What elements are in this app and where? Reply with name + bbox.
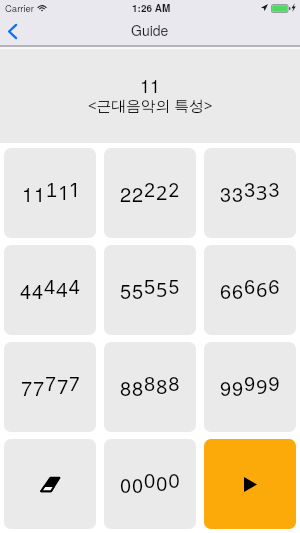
staticText: 6	[244, 276, 256, 298]
staticText: 7	[33, 373, 45, 402]
staticText: 9	[220, 373, 232, 402]
staticText: 8	[132, 373, 144, 402]
staticText: 1	[58, 179, 70, 206]
staticText: 6	[232, 276, 244, 305]
button[interactable]: 0	[104, 439, 196, 529]
staticText: 2	[168, 179, 180, 202]
staticText: 4	[32, 276, 44, 305]
staticText: 9	[268, 373, 280, 396]
staticText: 6	[220, 276, 232, 305]
staticText: 4	[56, 276, 68, 303]
staticText: 8	[168, 373, 180, 396]
staticText: 0	[132, 470, 144, 499]
staticText: 3	[268, 179, 280, 202]
staticText: 9	[232, 373, 244, 402]
staticText: 6	[268, 276, 280, 299]
staticText: 6	[256, 276, 268, 303]
staticText: 2	[144, 179, 156, 201]
button[interactable]: 3	[204, 148, 296, 238]
staticText: 7	[21, 373, 33, 402]
staticText: 9	[256, 373, 268, 400]
staticText: 8	[156, 373, 168, 400]
staticText: 1	[70, 179, 78, 202]
button[interactable]: 6	[204, 245, 296, 335]
button[interactable]: Back	[0, 17, 26, 45]
staticText: 3	[232, 179, 244, 208]
staticText: 1	[34, 179, 46, 208]
staticText: 4	[68, 276, 81, 299]
staticText: 1	[22, 179, 34, 208]
button[interactable]: Play	[204, 439, 296, 529]
button[interactable]: 8	[104, 342, 196, 432]
staticText: Carrier	[5, 1, 35, 15]
staticText: 7	[69, 373, 80, 396]
staticText: 7	[45, 373, 57, 395]
staticText: 4	[20, 276, 32, 305]
staticText: 0	[144, 470, 156, 492]
staticText: 2	[120, 179, 132, 208]
staticText: 1	[46, 179, 58, 201]
staticText: 4	[44, 276, 56, 298]
button[interactable]: 4	[4, 245, 96, 335]
button[interactable]: 5	[104, 245, 196, 335]
button[interactable]: 2	[104, 148, 196, 238]
staticText: 5	[120, 276, 132, 305]
button[interactable]: 7	[4, 342, 96, 432]
staticText: 3	[220, 179, 232, 208]
staticText: 3	[256, 179, 268, 206]
staticText: 5	[132, 276, 144, 305]
staticText: 5	[156, 276, 168, 303]
staticText: 8	[120, 373, 132, 402]
staticText: 11	[140, 72, 161, 98]
staticText: 1:26 AM	[132, 1, 171, 15]
staticText: 2	[132, 179, 144, 208]
staticText: Guide	[131, 20, 169, 40]
button[interactable]: Delete	[4, 439, 96, 529]
staticText: 7	[57, 373, 69, 400]
staticText: 0	[120, 470, 132, 499]
staticText: 0	[168, 470, 180, 493]
staticText: 0	[156, 470, 168, 497]
staticText: 3	[244, 179, 256, 201]
button[interactable]: 1	[4, 148, 96, 238]
staticText: 2	[156, 179, 168, 206]
staticText: 8	[144, 373, 156, 395]
staticText: 9	[244, 373, 256, 395]
button[interactable]: 9	[204, 342, 296, 432]
staticText: 5	[144, 276, 156, 298]
staticText: <근대음악의 특성>	[88, 95, 213, 115]
staticText: 5	[168, 276, 180, 299]
